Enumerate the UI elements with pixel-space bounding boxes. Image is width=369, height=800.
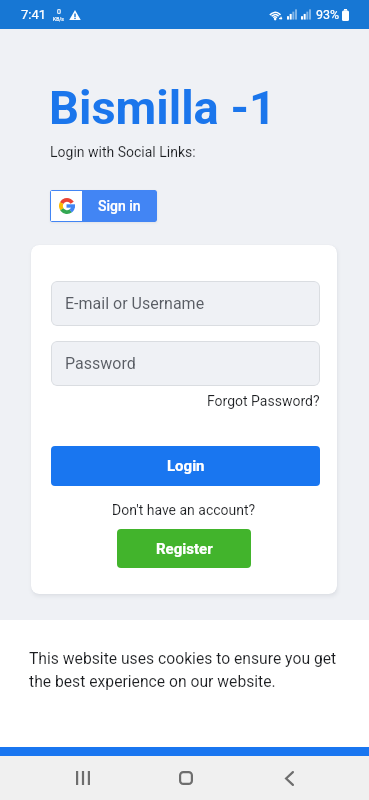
- staticText: This website uses cookies to ensure you …: [29, 649, 341, 690]
- button[interactable]: Forgot Password?: [51, 391, 320, 411]
- button[interactable]: Password: [51, 341, 320, 386]
- staticText: E-mail or Username: [65, 294, 205, 313]
- button[interactable]: Home: [155, 756, 216, 800]
- button[interactable]: Sign in: [50, 190, 157, 222]
- staticText: 0: [57, 8, 61, 16]
- staticText: 7:41: [21, 7, 47, 22]
- button[interactable]: Recent apps: [52, 756, 113, 800]
- button[interactable]: Register: [117, 529, 251, 568]
- staticText: Password: [65, 354, 136, 373]
- staticText: Sign in: [98, 198, 141, 214]
- button[interactable]: Login: [51, 446, 320, 486]
- staticText: Login: [167, 457, 205, 475]
- staticText: Login with Social Links:: [50, 144, 196, 160]
- staticText: Register: [156, 540, 213, 558]
- staticText: 93%: [316, 7, 340, 22]
- button[interactable]: E-mail or Username: [51, 281, 320, 326]
- staticText: KB/s: [53, 16, 64, 22]
- staticText: Forgot Password?: [207, 393, 320, 409]
- button[interactable]: Back: [259, 756, 320, 800]
- staticText: Bismilla -1: [49, 80, 276, 135]
- staticText: Don't have an account?: [112, 502, 256, 518]
